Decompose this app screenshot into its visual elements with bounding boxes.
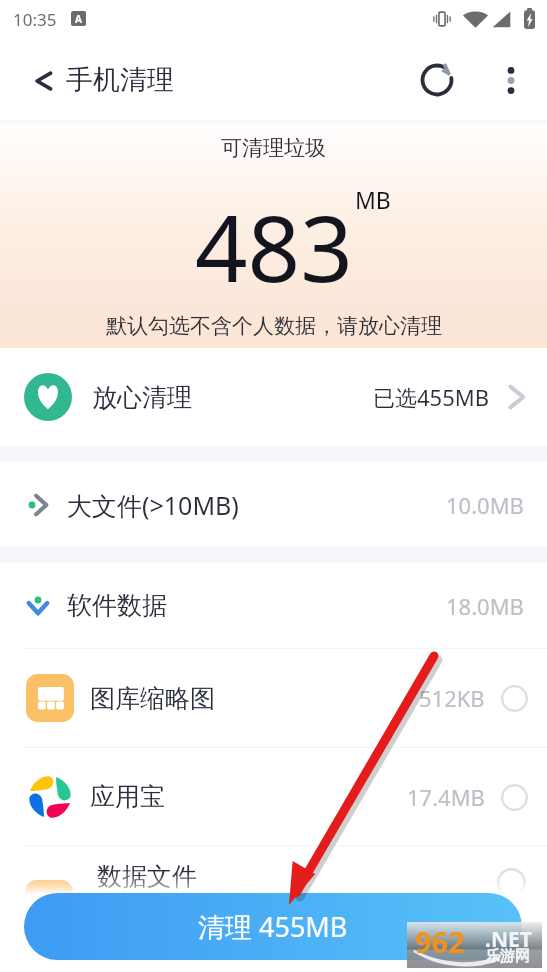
staticText: MB xyxy=(355,184,391,215)
staticText: .NET xyxy=(485,925,532,954)
button[interactable]: Back xyxy=(0,44,62,120)
staticText: 手机清理 xyxy=(66,63,174,97)
staticText: 大文件(>10MB) xyxy=(67,488,239,522)
button[interactable]: Select xyxy=(498,781,530,813)
staticText: 应用宝 xyxy=(90,781,165,812)
button[interactable]: 数据文件 xyxy=(0,846,547,972)
button[interactable]: 大文件(>10MB) xyxy=(0,462,547,547)
button[interactable]: Select xyxy=(498,682,530,714)
staticText: 10.0MB xyxy=(446,490,524,520)
staticText: 软件数据 xyxy=(67,590,167,621)
staticText: 17.4MB xyxy=(407,782,485,812)
staticText: 已选455MB xyxy=(373,382,490,412)
staticText: 图库缩略图 xyxy=(90,683,215,714)
button[interactable]: 放心清理 xyxy=(0,348,547,446)
button[interactable]: More options xyxy=(474,44,547,120)
staticText: 962 xyxy=(415,922,465,961)
staticText: 18.0MB xyxy=(446,591,524,621)
button[interactable]: 应用宝 xyxy=(0,748,547,845)
staticText: 默认勾选不含个人数据，请放心清理 xyxy=(106,313,442,339)
staticText: 乐游网 xyxy=(485,947,530,966)
button[interactable]: Refresh xyxy=(400,44,474,120)
staticText: 483 xyxy=(195,184,353,309)
staticText: 10:35 xyxy=(13,8,57,31)
button[interactable]: 软件数据 xyxy=(0,563,547,648)
staticText: 可清理垃圾 xyxy=(221,135,326,161)
staticText: 清理 455MB xyxy=(198,908,348,945)
staticText: 512KB xyxy=(419,683,485,713)
button[interactable]: 图库缩略图 xyxy=(0,649,547,747)
button[interactable]: 清理 455MB xyxy=(24,893,522,960)
staticText: 放心清理 xyxy=(92,382,192,413)
button[interactable]: Select xyxy=(495,866,527,898)
staticText: A xyxy=(75,12,82,26)
staticText: 数据文件 xyxy=(97,861,197,892)
